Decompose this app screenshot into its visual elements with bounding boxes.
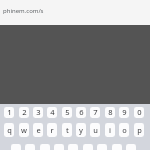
button[interactable]: 4 [47, 107, 57, 118]
staticText: o [122, 125, 127, 135]
button[interactable]: i [105, 123, 115, 137]
staticText: 9 [122, 107, 127, 117]
staticText: u [93, 125, 98, 135]
staticText: q [7, 125, 12, 135]
staticText: 0 [137, 107, 142, 117]
staticText: 8 [108, 107, 113, 117]
staticText: y [79, 125, 83, 135]
button[interactable]: 2 [19, 107, 29, 118]
staticText: e [36, 125, 41, 135]
button[interactable]: u [90, 123, 100, 137]
button[interactable]: d [40, 144, 50, 150]
button[interactable]: 6 [76, 107, 86, 118]
staticText: i [109, 125, 111, 135]
button[interactable]: k [112, 144, 122, 150]
staticText: phinem.com/s [3, 7, 44, 15]
staticText: r [50, 125, 54, 135]
button[interactable]: j [97, 144, 107, 150]
button[interactable]: w [19, 123, 29, 137]
staticText: 2 [22, 107, 27, 117]
button[interactable]: t [62, 123, 72, 137]
staticText: 5 [65, 107, 70, 117]
button[interactable]: a [11, 144, 21, 150]
staticText: 4 [50, 107, 55, 117]
button[interactable]: 9 [119, 107, 129, 118]
button[interactable]: 3 [33, 107, 43, 118]
button[interactable]: e [33, 123, 43, 137]
button[interactable]: p [134, 123, 144, 137]
button[interactable]: 7 [90, 107, 100, 118]
button[interactable]: q [4, 123, 14, 137]
button[interactable]: 0 [134, 107, 144, 118]
staticText: 6 [79, 107, 84, 117]
button[interactable]: s [25, 144, 35, 150]
staticText: 7 [93, 107, 98, 117]
staticText: w [21, 125, 27, 135]
button[interactable]: 5 [62, 107, 72, 118]
staticText: 3 [36, 107, 41, 117]
button[interactable]: phinem.com/s [0, 0, 150, 25]
button[interactable]: g [68, 144, 78, 150]
staticText: 1 [7, 107, 12, 117]
button[interactable]: l [126, 144, 136, 150]
button[interactable]: r [47, 123, 57, 137]
button[interactable]: o [119, 123, 129, 137]
button[interactable]: 8 [105, 107, 115, 118]
button[interactable]: h [83, 144, 93, 150]
staticText: p [137, 125, 142, 135]
staticText: t [66, 125, 69, 135]
button[interactable]: f [54, 144, 64, 150]
button[interactable]: y [76, 123, 86, 137]
button[interactable]: 1 [4, 107, 14, 118]
